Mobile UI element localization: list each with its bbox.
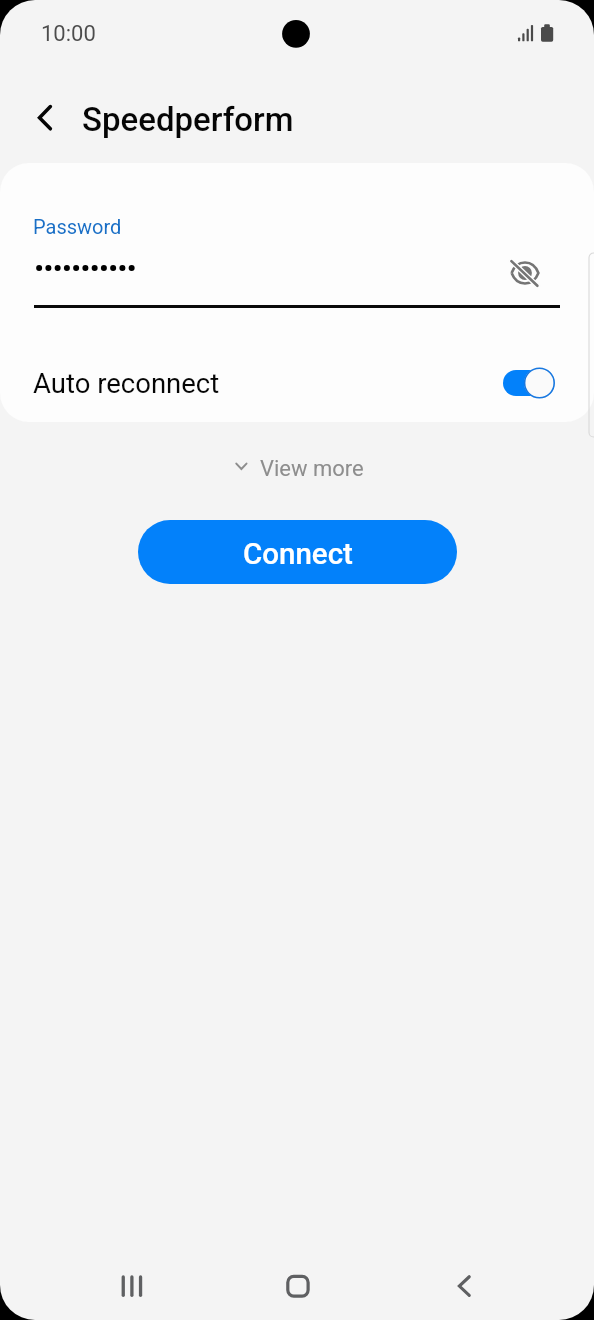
- button[interactable]: Back: [434, 1256, 494, 1316]
- staticText: View more: [260, 456, 364, 482]
- staticText: Password: [33, 215, 122, 238]
- button[interactable]: Show password: [497, 245, 553, 301]
- button[interactable]: Navigate up: [14, 90, 70, 146]
- button[interactable]: View more: [230, 450, 364, 488]
- button[interactable]: Recent apps: [102, 1256, 162, 1316]
- button[interactable]: Home: [268, 1256, 328, 1316]
- button[interactable]: Connect: [138, 520, 457, 584]
- button[interactable]: Auto reconnect: [0, 352, 594, 414]
- staticText: Auto reconnect: [33, 367, 220, 399]
- staticText: 10:00: [41, 21, 96, 47]
- staticText: Connect: [243, 537, 353, 572]
- button[interactable]: Auto reconnect on: [503, 366, 556, 400]
- staticText: Speedperform: [82, 100, 294, 139]
